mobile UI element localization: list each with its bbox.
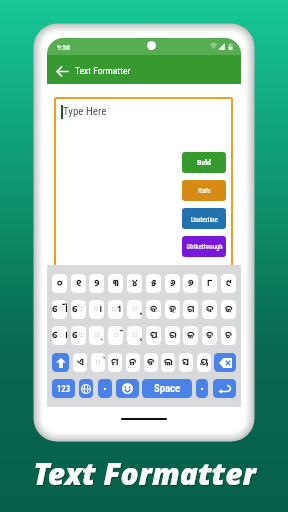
staticText: ୫ <box>151 277 157 290</box>
button[interactable]: ଗ <box>183 300 198 319</box>
staticText: ଦ <box>206 303 214 316</box>
staticText: ୟ <box>200 356 209 369</box>
button[interactable]: ୋ <box>52 326 67 345</box>
staticText: ମ <box>111 356 119 369</box>
staticText: ର <box>169 329 177 342</box>
staticText: Strikethrough <box>186 243 223 251</box>
staticText: ନ <box>129 356 137 369</box>
button[interactable]: Back <box>51 57 73 83</box>
button[interactable]: ୧ <box>71 274 86 293</box>
staticText: େ <box>72 329 86 342</box>
staticText: Bold <box>197 158 211 167</box>
button[interactable]: କ <box>183 326 198 345</box>
staticText: ୀ <box>110 303 122 316</box>
staticText: ବ <box>150 303 158 316</box>
staticText: ୬ <box>170 277 176 290</box>
staticText: ୨ <box>94 277 100 290</box>
staticText: Type Here <box>63 105 107 118</box>
button[interactable]: ୀ <box>108 300 123 319</box>
button[interactable]: ପ <box>146 326 161 345</box>
staticText: ୁ <box>131 303 139 316</box>
staticText: ୮ <box>207 277 213 290</box>
staticText: ଵ <box>147 356 155 369</box>
button[interactable]: ୩ <box>108 274 123 293</box>
button[interactable]: ନ <box>126 353 140 372</box>
button[interactable]: େ <box>71 326 86 345</box>
staticText: 9:30 <box>57 43 71 52</box>
staticText: ା <box>92 303 102 316</box>
button[interactable]: ଚ <box>221 326 236 345</box>
button[interactable]: 123 <box>52 379 75 398</box>
button[interactable]: ୮ <box>202 274 217 293</box>
button[interactable]: ୯ <box>221 274 236 293</box>
button[interactable]: Emoji <box>116 379 139 398</box>
staticText: ୩ <box>113 277 119 290</box>
button[interactable]: ୌ <box>52 300 67 319</box>
staticText: Text Formatter <box>33 453 256 494</box>
button[interactable]: ଵ <box>144 353 158 372</box>
button[interactable]: ୦ <box>52 274 67 293</box>
button[interactable]: Enter <box>213 379 236 398</box>
button[interactable]: ୨ <box>89 274 104 293</box>
staticText: ୯ <box>226 277 232 290</box>
button[interactable]: ୪ <box>127 274 142 293</box>
staticText: Text Formatter <box>34 454 257 495</box>
button[interactable]: ୁ <box>127 300 142 319</box>
button[interactable]: Change language <box>79 379 93 398</box>
staticText: ଲ <box>164 356 173 369</box>
button[interactable]: ି <box>108 326 123 345</box>
staticText: ହ <box>169 303 177 316</box>
button[interactable]: ମ <box>108 353 122 372</box>
button[interactable]: ବ <box>146 300 161 319</box>
button[interactable]: Backspace <box>214 353 236 372</box>
button[interactable]: Underline <box>182 208 226 229</box>
button[interactable]: Strikethrough <box>182 236 226 257</box>
button[interactable]: Bold <box>182 152 226 173</box>
button[interactable]: ଁ <box>91 353 105 372</box>
staticText: ୧ <box>76 277 82 290</box>
button[interactable]: ୂ <box>127 326 142 345</box>
button[interactable]: ୟ <box>197 353 211 372</box>
staticText: ପ <box>150 329 158 342</box>
button[interactable]: Comma <box>98 379 112 398</box>
button[interactable]: Italic <box>182 180 226 201</box>
staticText: ୋ <box>52 329 67 342</box>
staticText: ଏ <box>77 356 84 369</box>
staticText: Space <box>154 382 181 395</box>
staticText: ଗ <box>187 303 195 316</box>
button[interactable]: Space <box>142 379 192 398</box>
staticText: ି <box>112 329 120 342</box>
button[interactable]: ଏ <box>73 353 87 372</box>
button[interactable]: ୍ <box>89 326 104 345</box>
button[interactable]: ୫ <box>146 274 161 293</box>
button[interactable]: ଜ <box>221 300 236 319</box>
button[interactable]: ା <box>89 300 104 319</box>
staticText: ସ <box>182 356 190 369</box>
staticText: ୈ <box>72 303 86 316</box>
staticText: ତ <box>206 329 214 342</box>
staticText: ୪ <box>132 277 138 290</box>
button[interactable]: ୈ <box>71 300 86 319</box>
button[interactable]: ଲ <box>161 353 175 372</box>
button[interactable]: ୬ <box>165 274 180 293</box>
staticText: Text Formatter <box>75 65 131 76</box>
button[interactable]: ୭ <box>183 274 198 293</box>
button[interactable]: ସ <box>179 353 193 372</box>
staticText: 123 <box>57 384 71 394</box>
staticText: ୂ <box>131 329 139 342</box>
staticText: Italic <box>198 187 211 195</box>
button[interactable]: Shift <box>52 353 69 372</box>
staticText: ୌ <box>52 303 67 316</box>
staticText: ୦ <box>57 277 63 290</box>
staticText: Underline <box>191 215 218 223</box>
button[interactable]: ଦ <box>202 300 217 319</box>
button[interactable]: ର <box>165 326 180 345</box>
staticText: ଁ <box>94 356 102 369</box>
staticText: ଜ <box>225 303 233 316</box>
button[interactable]: ହ <box>165 300 180 319</box>
button[interactable]: ତ <box>202 326 217 345</box>
staticText: ଚ <box>225 329 232 342</box>
button[interactable]: Period <box>196 379 208 398</box>
staticText: କ <box>187 329 195 342</box>
staticText: ୭ <box>188 277 194 290</box>
